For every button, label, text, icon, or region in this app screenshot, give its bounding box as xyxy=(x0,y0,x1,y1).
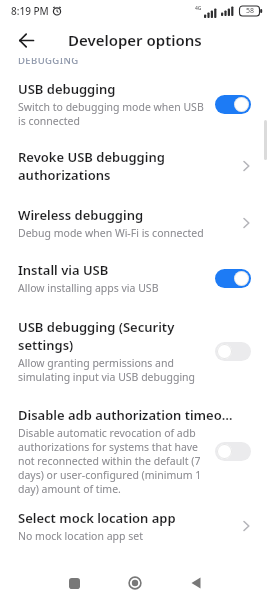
button[interactable]: Select mock location app xyxy=(0,509,270,543)
staticText: USB debugging xyxy=(18,80,116,98)
button[interactable] xyxy=(111,566,159,600)
button[interactable]: Install via USB xyxy=(0,261,270,295)
button[interactable]: Revoke USB debugging authorizations xyxy=(0,148,270,184)
staticText: USB debugging (Security settings) xyxy=(18,318,175,354)
button[interactable]: Disable adb authorization timeout xyxy=(0,406,270,496)
button[interactable] xyxy=(215,95,251,114)
staticText: 4G xyxy=(195,5,202,12)
staticText: Allow installing apps via USB xyxy=(18,281,159,295)
staticText: Disable adb authorization timeout xyxy=(18,406,234,424)
button[interactable]: USB debugging xyxy=(0,80,270,128)
staticText: Allow granting permissions and simulatin… xyxy=(18,356,196,384)
staticText: Developer options xyxy=(68,30,202,50)
button[interactable] xyxy=(50,566,98,600)
staticText: Wireless debugging xyxy=(18,206,144,224)
staticText: Debug mode when Wi-Fi is connected xyxy=(18,226,204,240)
button[interactable] xyxy=(215,442,251,461)
button[interactable] xyxy=(215,269,251,288)
staticText: 8:19 PM xyxy=(11,4,49,18)
staticText: Install via USB xyxy=(18,261,109,279)
button[interactable]: USB debugging (Security settings) xyxy=(0,318,270,384)
button[interactable]: Wireless debugging xyxy=(0,206,270,240)
button[interactable] xyxy=(10,24,42,56)
button[interactable] xyxy=(172,566,220,600)
staticText: Revoke USB debugging authorizations xyxy=(18,148,165,184)
staticText: Disable automatic revocation of adb auth… xyxy=(18,426,202,496)
staticText: DEBUGGING xyxy=(18,58,79,65)
button[interactable] xyxy=(215,342,251,361)
staticText: No mock location app set xyxy=(18,529,143,543)
staticText: Select mock location app xyxy=(18,509,176,527)
staticText: Switch to debugging mode when USB is con… xyxy=(18,100,204,128)
staticText: 58 xyxy=(246,6,255,16)
